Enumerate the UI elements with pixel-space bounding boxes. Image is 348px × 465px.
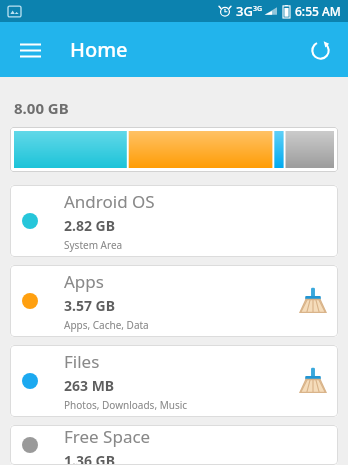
staticText: 2.82 GB bbox=[64, 216, 116, 235]
button[interactable]: Files bbox=[10, 345, 338, 417]
button[interactable]: Clean bbox=[296, 284, 330, 318]
staticText: System Area bbox=[64, 238, 123, 252]
button[interactable] bbox=[14, 131, 334, 168]
staticText: 8.00 GB bbox=[14, 98, 69, 118]
staticText: 263 MB bbox=[64, 376, 115, 395]
button[interactable]: Clean bbox=[296, 364, 330, 398]
staticText: 3.57 GB bbox=[64, 296, 116, 315]
staticText: 3G bbox=[253, 4, 263, 14]
button[interactable]: Apps bbox=[10, 265, 338, 337]
staticText: Files bbox=[64, 350, 100, 373]
button[interactable]: Refresh bbox=[300, 30, 340, 70]
button[interactable]: Open navigation menu bbox=[10, 30, 50, 70]
staticText: Photos, Downloads, Music bbox=[64, 398, 188, 412]
staticText: Apps, Cache, Data bbox=[64, 318, 149, 332]
staticText: Apps bbox=[64, 270, 104, 293]
button[interactable]: Android OS bbox=[10, 185, 338, 257]
staticText: Home bbox=[70, 36, 128, 63]
staticText: Free Space bbox=[64, 425, 151, 448]
staticText: 6:55 AM bbox=[295, 3, 341, 19]
staticText: 3G bbox=[236, 2, 253, 20]
staticText: Android OS bbox=[64, 190, 155, 213]
staticText: 1.36 GB bbox=[64, 451, 116, 465]
button[interactable]: Free Space bbox=[10, 425, 338, 465]
